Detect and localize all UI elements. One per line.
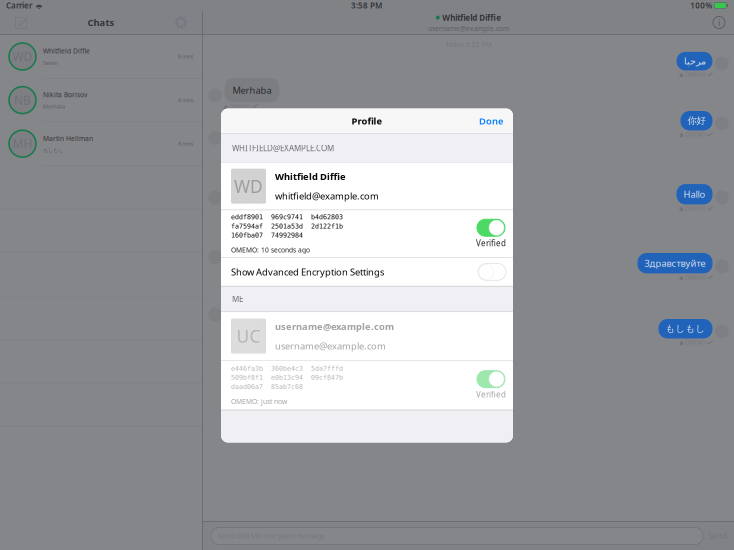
staticText: Здравствуйте: [644, 257, 705, 269]
staticText: Today 3:52 PM: [445, 40, 491, 49]
button[interactable]: WD: [0, 35, 202, 78]
staticText: e446fa3b 360be4c3 5da7fffd: [231, 365, 343, 372]
staticText: eddf8901 969c9741 b4d62803: [231, 213, 343, 221]
staticText: Merhaba: [43, 103, 65, 110]
staticText: Nikita Borisov: [43, 90, 87, 99]
staticText: Send OMEMO encrypted message: [218, 532, 325, 540]
staticText: もしもし: [665, 323, 705, 334]
staticText: Martin Hellman: [43, 134, 93, 143]
button[interactable]: Done: [469, 108, 513, 133]
staticText: OMEMO: [229, 322, 250, 329]
staticText: Selam: [43, 59, 58, 66]
staticText: مرحبا: [683, 56, 705, 66]
button[interactable]: Send: [708, 531, 727, 541]
staticText: MH: [12, 136, 32, 152]
staticText: OMEMO: [229, 205, 250, 212]
staticText: OMEMO: 10 seconds ago: [231, 245, 310, 254]
staticText: Send: [708, 531, 727, 541]
staticText: 100%: [690, 0, 712, 11]
button[interactable]: Settings: [170, 11, 192, 33]
staticText: OMEMO: [229, 265, 250, 272]
staticText: Carrier: [6, 0, 32, 11]
staticText: Whitfield Diffie: [442, 12, 501, 23]
staticText: OMEMO: [229, 145, 250, 153]
staticText: 8 mins: [178, 97, 194, 104]
staticText: username@example.com: [428, 24, 509, 33]
staticText: Hallo: [683, 188, 705, 200]
staticText: WD: [234, 175, 263, 198]
staticText: UC: [236, 325, 260, 348]
staticText: もしもし: [43, 147, 63, 153]
staticText: 你好: [687, 115, 705, 126]
staticText: Whitfield Diffie: [43, 46, 90, 55]
staticText: Verified: [476, 238, 506, 248]
staticText: username@example.com: [275, 340, 386, 352]
staticText: Show Advanced Encryption Settings: [231, 266, 384, 278]
staticText: OMEMO: [685, 274, 706, 281]
button[interactable]: Verified, on: [477, 219, 505, 236]
staticText: OMEMO: [229, 103, 250, 110]
staticText: daad06a7 85ab7c68: [231, 383, 303, 390]
staticText: fa7594af 2501a53d 2d122f1b: [231, 222, 343, 230]
staticText: OMEMO: [685, 205, 706, 212]
staticText: OMEMO: [685, 131, 706, 138]
staticText: i: [718, 16, 720, 29]
button[interactable]: Show Advanced Encryption Settings: [221, 258, 513, 286]
staticText: whitfield@example.com: [275, 190, 379, 202]
staticText: 509bf8f1 e0b13c94 09cf847b: [231, 374, 343, 381]
button[interactable]: Contact info: [709, 12, 734, 32]
staticText: OMEMO: [685, 339, 706, 346]
staticText: Merhaba: [232, 84, 271, 96]
staticText: OMEMO: [685, 71, 706, 78]
button[interactable]: Show advanced encryption settings, off: [478, 263, 506, 280]
button[interactable]: WD: [221, 163, 513, 210]
staticText: Whitfield Diffie: [275, 170, 346, 183]
staticText: ME: [232, 294, 243, 304]
staticText: username@example.com: [275, 320, 394, 333]
staticText: NB: [14, 92, 31, 108]
staticText: 160fba07 74992984: [231, 231, 303, 239]
staticText: Profile: [351, 115, 382, 127]
staticText: 8 mins: [178, 140, 194, 147]
button[interactable]: MH: [0, 122, 202, 165]
button[interactable]: Verified, on: [477, 371, 505, 388]
staticText: Verified: [476, 389, 506, 400]
staticText: WHITFIELD@EXAMPLE.COM: [232, 143, 334, 153]
staticText: OMEMO: just now: [231, 397, 287, 406]
staticText: WD: [12, 48, 32, 64]
staticText: Chats: [87, 16, 114, 29]
staticText: 8 mins: [178, 53, 194, 60]
button[interactable]: NB: [0, 79, 202, 122]
button[interactable]: UC: [221, 312, 513, 360]
staticText: 3:58 PM: [351, 0, 382, 11]
staticText: Done: [479, 115, 503, 127]
button[interactable]: New message: [10, 11, 32, 33]
